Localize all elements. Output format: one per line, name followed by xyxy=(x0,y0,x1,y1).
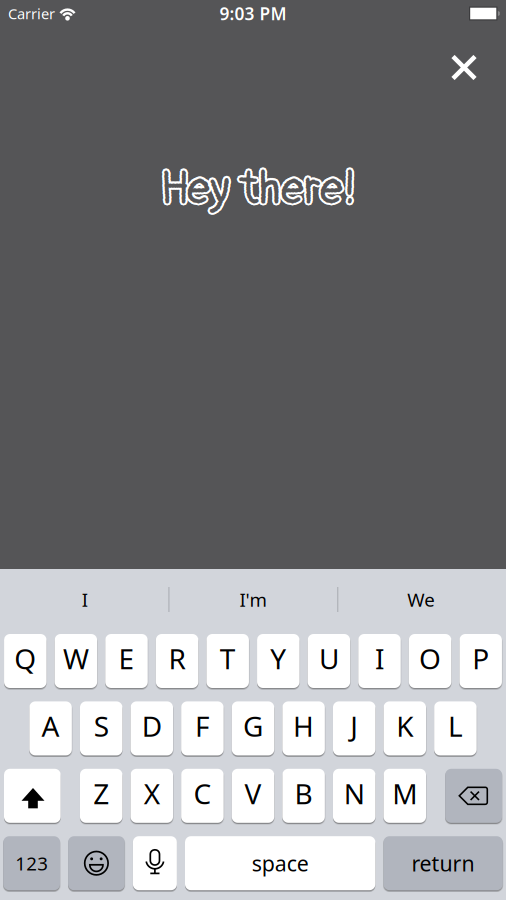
button[interactable]: We xyxy=(337,569,505,630)
button[interactable]: F xyxy=(181,701,224,755)
staticText: Hey there! xyxy=(162,162,358,219)
staticText: 9:03 PM xyxy=(219,2,286,25)
button[interactable]: Q xyxy=(4,634,47,688)
button[interactable]: S xyxy=(80,701,122,755)
staticText: Hey there! xyxy=(162,160,358,218)
staticText: return xyxy=(412,849,475,877)
staticText: U xyxy=(319,640,339,677)
staticText: Z xyxy=(93,775,109,812)
button[interactable]: O xyxy=(409,634,451,688)
button[interactable]: N xyxy=(333,769,375,823)
button[interactable]: B xyxy=(282,769,325,823)
button[interactable]: C xyxy=(181,769,224,823)
staticText: G xyxy=(243,707,263,744)
staticText: I xyxy=(375,640,384,677)
button[interactable]: L xyxy=(434,701,477,755)
button[interactable]: A xyxy=(29,701,72,755)
staticText: Y xyxy=(270,640,286,677)
staticText: J xyxy=(350,707,358,744)
button[interactable]: I xyxy=(1,569,169,630)
staticText: space xyxy=(252,849,309,877)
staticText: O xyxy=(419,640,441,677)
staticText: D xyxy=(142,707,162,744)
staticText: Hey there! xyxy=(160,160,356,218)
button[interactable]: Y xyxy=(257,634,300,688)
staticText: F xyxy=(195,707,210,744)
staticText: N xyxy=(344,775,365,812)
staticText: X xyxy=(144,775,160,812)
button[interactable]: E xyxy=(105,634,148,688)
staticText: V xyxy=(244,775,261,812)
button[interactable]: K xyxy=(384,701,426,755)
staticText: Hey there! xyxy=(158,162,354,219)
button[interactable]: I xyxy=(358,634,401,688)
button[interactable]: T xyxy=(206,634,249,688)
staticText: S xyxy=(94,707,109,744)
staticText: H xyxy=(293,707,314,744)
staticText: Q xyxy=(14,640,36,677)
staticText: A xyxy=(42,707,60,744)
button[interactable]: Dictation xyxy=(133,836,177,890)
staticText: E xyxy=(118,640,134,677)
button[interactable]: Emoji xyxy=(68,836,125,890)
staticText: K xyxy=(396,707,413,744)
button[interactable]: V xyxy=(232,769,274,823)
button[interactable]: M xyxy=(384,769,426,823)
staticText: Hey there! xyxy=(158,159,354,216)
button[interactable]: Close xyxy=(440,43,488,91)
staticText: Hey there! xyxy=(160,162,356,220)
button[interactable]: Delete xyxy=(445,769,502,823)
button[interactable]: space xyxy=(185,836,375,890)
staticText: P xyxy=(472,640,489,677)
staticText: 123 xyxy=(15,851,48,876)
button[interactable]: Z xyxy=(80,769,122,823)
button[interactable]: 123 xyxy=(3,836,60,890)
staticText: W xyxy=(63,640,89,677)
staticText: R xyxy=(169,640,186,677)
staticText: Hey there! xyxy=(158,160,354,218)
button[interactable]: J xyxy=(333,701,375,755)
staticText: Hey there! xyxy=(160,158,356,216)
button[interactable]: G xyxy=(232,701,274,755)
staticText: I xyxy=(82,587,88,612)
staticText: Carrier xyxy=(8,4,55,23)
button[interactable]: X xyxy=(131,769,173,823)
button[interactable]: return xyxy=(383,836,503,890)
staticText: C xyxy=(193,775,211,812)
button[interactable]: U xyxy=(308,634,350,688)
button[interactable]: Shift xyxy=(4,769,61,823)
button[interactable]: I'm xyxy=(169,569,337,630)
button[interactable]: H xyxy=(282,701,325,755)
staticText: I'm xyxy=(239,587,266,612)
staticText: L xyxy=(448,707,463,744)
button[interactable]: P xyxy=(459,634,502,688)
button[interactable]: W xyxy=(55,634,97,688)
staticText: We xyxy=(407,587,435,612)
staticText: M xyxy=(392,775,417,812)
staticText: Hey there! xyxy=(162,159,358,216)
button[interactable]: D xyxy=(131,701,173,755)
button[interactable]: R xyxy=(156,634,198,688)
staticText: T xyxy=(220,640,236,677)
staticText: B xyxy=(295,775,313,812)
